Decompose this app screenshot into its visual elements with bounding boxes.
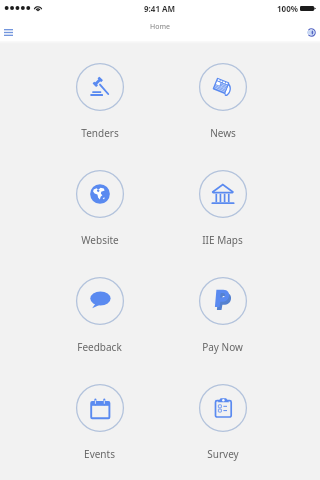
staticText: Events	[84, 447, 115, 461]
button[interactable]: Feedback	[38, 255, 161, 362]
staticText: Feedback	[77, 340, 122, 354]
button[interactable]: Website	[38, 148, 161, 255]
button[interactable]: Pay Now	[161, 255, 284, 362]
staticText: Survey	[207, 447, 239, 461]
staticText: News	[210, 126, 236, 140]
staticText: Home	[150, 22, 170, 32]
staticText: Tenders	[81, 126, 119, 140]
button[interactable]: Menu	[0, 20, 17, 44]
staticText: 9:41 AM	[144, 3, 176, 14]
button[interactable]: News	[161, 41, 284, 148]
staticText: Pay Now	[202, 340, 243, 354]
staticText: 100%	[277, 3, 298, 14]
staticText: IIE Maps	[202, 233, 243, 247]
button[interactable]: IIE Maps	[161, 148, 284, 255]
button[interactable]: Survey	[161, 362, 284, 469]
button[interactable]: Tenders	[38, 41, 161, 148]
staticText: Website	[81, 233, 119, 247]
button[interactable]: Events	[38, 362, 161, 469]
button[interactable]: Logout	[302, 20, 320, 44]
